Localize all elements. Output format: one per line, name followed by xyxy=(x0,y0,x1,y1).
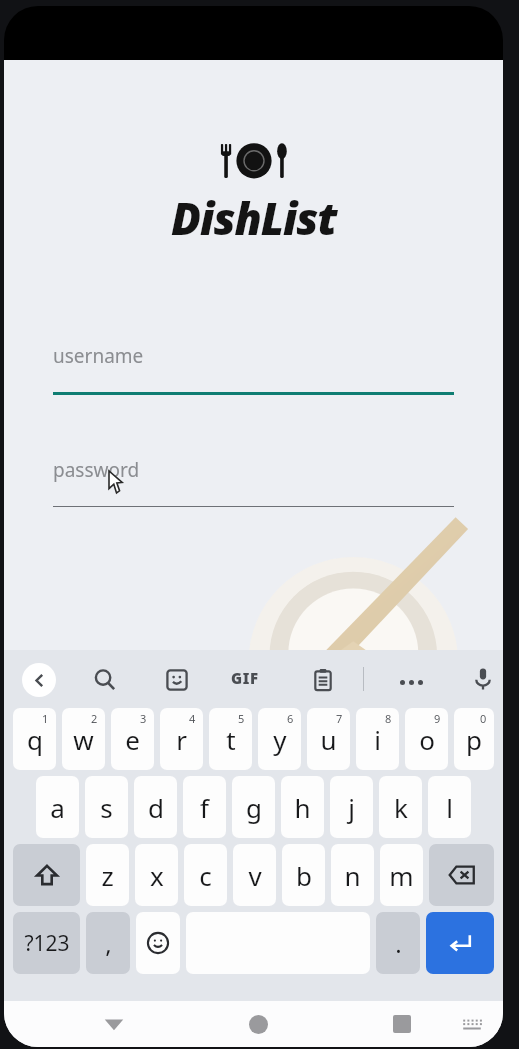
staticText: l xyxy=(446,790,453,825)
staticText: , xyxy=(105,927,112,960)
staticText: v xyxy=(248,858,262,893)
staticText: s xyxy=(100,790,113,825)
staticText: t xyxy=(226,722,236,757)
button[interactable] xyxy=(429,844,494,906)
button[interactable]: k xyxy=(379,776,422,838)
button[interactable]: Stickers xyxy=(162,665,192,695)
staticText: o xyxy=(419,722,435,757)
staticText: w xyxy=(73,722,94,757)
staticText: d xyxy=(148,790,164,825)
button[interactable]: h xyxy=(281,776,324,838)
button[interactable]: Back xyxy=(92,1001,136,1047)
button[interactable]: v xyxy=(233,844,276,906)
button[interactable]: b xyxy=(282,844,325,906)
button[interactable]: m xyxy=(380,844,423,906)
button[interactable]: t xyxy=(209,708,252,770)
staticText: q xyxy=(27,722,43,757)
staticText: 5 xyxy=(238,711,245,726)
staticText: 0 xyxy=(480,711,487,726)
staticText: n xyxy=(344,858,361,893)
staticText: 6 xyxy=(287,711,294,726)
button[interactable]: Recents xyxy=(380,1001,424,1047)
staticText: a xyxy=(50,790,65,825)
button[interactable]: Home xyxy=(236,1001,280,1047)
button[interactable]: More options xyxy=(394,665,428,699)
button[interactable]: e xyxy=(111,708,154,770)
staticText: 2 xyxy=(91,711,98,726)
button[interactable]: l xyxy=(428,776,471,838)
staticText: e xyxy=(125,722,140,757)
staticText: 3 xyxy=(140,711,147,726)
staticText: b xyxy=(296,858,312,893)
button[interactable]: x xyxy=(135,844,178,906)
button[interactable]: . xyxy=(376,912,420,974)
staticText: 9 xyxy=(434,711,441,726)
staticText: j xyxy=(348,790,355,825)
staticText: z xyxy=(101,858,114,893)
button[interactable]: y xyxy=(258,708,301,770)
button[interactable]: s xyxy=(85,776,128,838)
staticText: k xyxy=(394,790,408,825)
button[interactable] xyxy=(13,844,80,906)
button[interactable]: g xyxy=(232,776,275,838)
button[interactable]: Switch keyboard xyxy=(452,1001,492,1047)
staticText: p xyxy=(466,722,482,757)
staticText: x xyxy=(150,858,164,893)
staticText: username xyxy=(53,343,144,369)
button[interactable] xyxy=(426,912,494,974)
staticText: c xyxy=(199,858,212,893)
button[interactable]: c xyxy=(184,844,227,906)
button[interactable]: j xyxy=(330,776,373,838)
staticText: 4 xyxy=(189,711,196,726)
button[interactable]: o xyxy=(405,708,448,770)
staticText: password xyxy=(53,457,140,483)
button[interactable]: w xyxy=(62,708,105,770)
button[interactable]: Back xyxy=(22,663,56,697)
button[interactable]: q xyxy=(13,708,56,770)
staticText: y xyxy=(273,722,287,757)
button[interactable]: password xyxy=(53,457,454,507)
staticText: g xyxy=(246,790,262,825)
button[interactable]: z xyxy=(86,844,129,906)
staticText: . xyxy=(395,927,402,960)
staticText: u xyxy=(320,722,337,757)
button[interactable]: Clipboard xyxy=(308,665,338,695)
button[interactable]: , xyxy=(86,912,130,974)
button[interactable] xyxy=(136,912,180,974)
staticText: 8 xyxy=(385,711,392,726)
button[interactable]: p xyxy=(454,708,494,770)
staticText: GIF xyxy=(231,668,259,688)
staticText: 7 xyxy=(336,711,343,726)
staticText: r xyxy=(176,722,187,757)
staticText: f xyxy=(200,790,209,825)
button[interactable]: i xyxy=(356,708,399,770)
button[interactable]: username xyxy=(53,343,454,395)
button[interactable]: f xyxy=(183,776,226,838)
button[interactable]: ?123 xyxy=(13,912,80,974)
button[interactable]: GIF xyxy=(231,668,259,688)
button[interactable]: u xyxy=(307,708,350,770)
staticText: h xyxy=(294,790,311,825)
button[interactable]: a xyxy=(36,776,79,838)
button[interactable]: d xyxy=(134,776,177,838)
staticText: i xyxy=(374,722,381,757)
staticText: DishList xyxy=(171,188,337,248)
staticText: 1 xyxy=(42,711,49,726)
button[interactable]: Search xyxy=(90,665,120,695)
staticText: ?123 xyxy=(24,929,70,958)
button[interactable]: r xyxy=(160,708,203,770)
button[interactable]: Voice input xyxy=(468,664,498,694)
button[interactable]: n xyxy=(331,844,374,906)
staticText: m xyxy=(389,858,414,893)
